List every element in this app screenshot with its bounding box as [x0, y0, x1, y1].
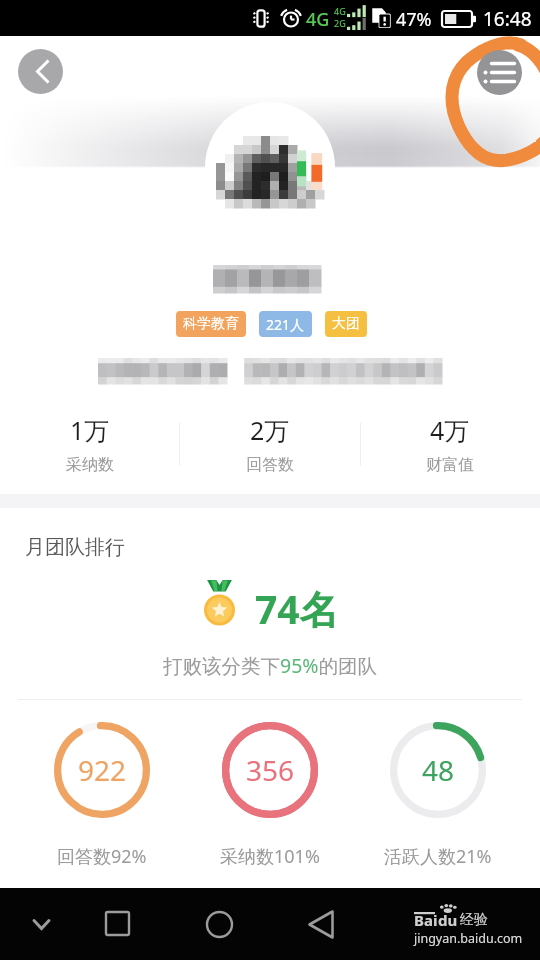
staticText: 2万	[250, 413, 290, 447]
staticText: 采纳数101%	[220, 844, 320, 869]
staticText: du	[438, 910, 458, 930]
button[interactable]: 221人	[259, 311, 312, 337]
staticText: 1万	[70, 413, 110, 447]
staticText: 922	[78, 751, 127, 789]
staticText: 经验	[460, 911, 488, 929]
staticText: 活跃人数21%	[384, 844, 492, 869]
staticText: Bai	[414, 910, 438, 930]
staticText: 科学教育	[183, 315, 239, 333]
staticText: 月团队排行	[25, 535, 125, 560]
staticText: 356	[246, 751, 295, 789]
staticText: 47%	[396, 7, 432, 32]
button[interactable]: Recents	[95, 902, 140, 947]
button[interactable]: Hide keyboard	[19, 902, 64, 947]
button[interactable]: 922	[18, 722, 186, 869]
staticText: 4万	[430, 413, 470, 447]
button[interactable]: 科学教育	[176, 311, 246, 337]
button[interactable]: Home	[197, 902, 242, 947]
button[interactable]: 356	[186, 722, 354, 869]
button[interactable]: Menu	[477, 50, 522, 95]
staticText: 大团	[332, 315, 360, 333]
staticText: jingyan.baidu.com	[414, 930, 523, 947]
button[interactable]: 2万	[180, 400, 360, 494]
staticText: 74名	[255, 582, 339, 635]
staticText: 采纳数	[66, 455, 114, 475]
staticText: 回答数92%	[57, 844, 147, 869]
button[interactable]: 4万	[360, 400, 540, 494]
staticText: 48	[422, 751, 455, 789]
staticText: 4G	[334, 5, 346, 17]
button[interactable]: 48	[354, 722, 522, 869]
staticText: 221人	[266, 315, 305, 334]
staticText: 4G	[306, 7, 330, 32]
staticText: 财富值	[426, 455, 474, 475]
staticText: 16:48	[483, 6, 532, 32]
staticText: 回答数	[246, 455, 294, 475]
button[interactable]: Back	[299, 902, 344, 947]
button[interactable]: Back	[18, 49, 63, 94]
button[interactable]: 1万	[0, 400, 180, 494]
staticText: 2G	[334, 17, 346, 29]
button[interactable]: 大团	[325, 311, 367, 337]
staticText: 打败该分类下95%的团队	[0, 652, 540, 679]
